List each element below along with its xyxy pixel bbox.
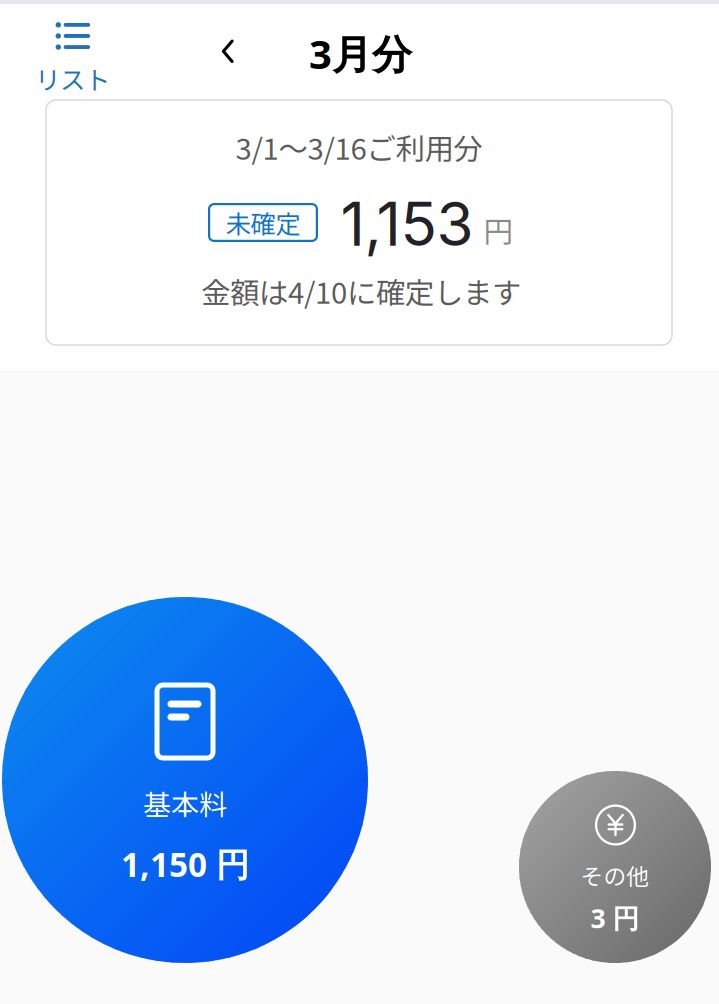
button[interactable]: Back	[204, 27, 252, 75]
button[interactable]: リスト	[29, 19, 117, 99]
staticText: 1,150 円	[121, 841, 249, 887]
staticText: 円	[483, 209, 512, 251]
button[interactable]: その他	[519, 771, 711, 963]
staticText: 金額は4/10に確定します	[201, 270, 521, 312]
staticText: 1,153	[340, 188, 473, 260]
staticText: リスト	[35, 60, 110, 97]
staticText: 3 円	[590, 900, 639, 936]
staticText: 未確定	[225, 204, 300, 241]
staticText: その他	[580, 859, 649, 891]
button[interactable]: 基本料	[2, 597, 368, 963]
staticText: 3月分	[309, 26, 412, 81]
staticText: 基本料	[143, 783, 227, 823]
staticText: 3/1〜3/16ご利用分	[235, 126, 482, 168]
